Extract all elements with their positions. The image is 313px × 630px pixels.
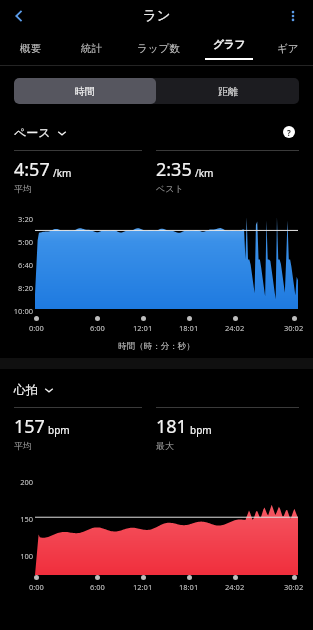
button[interactable]: Help <box>279 122 299 142</box>
staticText: 150 <box>20 514 33 524</box>
staticText: bpm <box>190 423 212 437</box>
button[interactable]: 概要 <box>0 31 61 66</box>
staticText: 3:20 <box>18 214 33 224</box>
staticText: 100 <box>20 551 33 561</box>
staticText: 181 <box>156 414 187 439</box>
staticText: 6:00 <box>90 582 105 592</box>
button[interactable]: ラップ数 <box>121 31 196 66</box>
staticText: /km <box>195 166 214 180</box>
staticText: 18:01 <box>179 582 199 592</box>
staticText: 統計 <box>81 42 102 55</box>
staticText: bpm <box>48 423 70 437</box>
staticText: 6:00 <box>90 323 105 333</box>
staticText: 6:40 <box>18 260 33 270</box>
staticText: 概要 <box>20 42 41 55</box>
staticText: 8:20 <box>18 283 33 293</box>
button[interactable]: グラフ <box>196 31 262 66</box>
button[interactable]: 統計 <box>61 31 121 66</box>
button[interactable]: ギア <box>262 31 313 66</box>
staticText: ギア <box>277 42 299 55</box>
staticText: 2:35 <box>156 157 192 182</box>
button[interactable]: Back <box>4 1 34 31</box>
staticText: 5:00 <box>18 237 33 247</box>
staticText: 200 <box>20 477 33 487</box>
staticText: グラフ <box>213 38 246 51</box>
button[interactable]: 距離 <box>156 78 299 104</box>
staticText: 0:00 <box>29 582 44 592</box>
staticText: 4:57 <box>14 157 50 182</box>
staticText: 157 <box>14 414 45 439</box>
button[interactable]: 心拍 <box>14 382 54 397</box>
staticText: 距離 <box>218 85 238 98</box>
staticText: 18:01 <box>179 323 199 333</box>
staticText: 最大 <box>156 440 174 451</box>
staticText: ラン <box>143 7 171 24</box>
staticText: ペース <box>14 125 51 140</box>
staticText: 時間 <box>75 85 95 98</box>
staticText: 12:01 <box>133 323 153 333</box>
button[interactable]: More options <box>279 2 307 30</box>
staticText: 平均 <box>14 440 32 451</box>
button[interactable]: 時間 <box>14 78 156 104</box>
staticText: ? <box>287 127 291 138</box>
staticText: 時間（時：分：秒） <box>0 341 313 352</box>
staticText: 平均 <box>14 183 32 194</box>
staticText: ラップ数 <box>137 42 180 55</box>
staticText: 0:00 <box>29 323 44 333</box>
staticText: 30:02 <box>284 582 304 592</box>
staticText: 12:01 <box>133 582 153 592</box>
staticText: 心拍 <box>14 382 38 397</box>
staticText: 10:00 <box>13 306 33 316</box>
staticText: 24:02 <box>225 323 245 333</box>
staticText: ベスト <box>156 183 184 194</box>
staticText: 24:02 <box>225 582 245 592</box>
button[interactable]: ペース <box>14 125 67 140</box>
staticText: 30:02 <box>284 323 304 333</box>
staticText: /km <box>53 166 72 180</box>
